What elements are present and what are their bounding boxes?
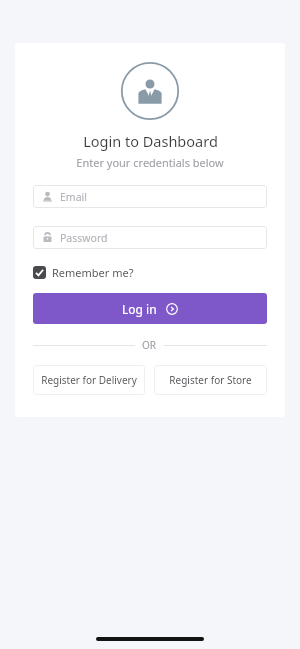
staticText: Login to Dashboard <box>83 131 218 151</box>
button[interactable]: Register for Store <box>154 365 267 395</box>
staticText: Register for Delivery <box>41 373 137 387</box>
staticText: OR <box>142 338 157 352</box>
button[interactable]: Log in <box>33 293 267 324</box>
button[interactable]: Remember me? <box>33 265 267 280</box>
staticText: Log in <box>122 301 157 317</box>
button[interactable]: Register for Delivery <box>33 365 145 395</box>
staticText: Password <box>60 231 108 245</box>
button[interactable]: Password <box>33 226 267 249</box>
button[interactable]: Email <box>33 185 267 208</box>
staticText: Enter your credentials below <box>76 155 224 170</box>
staticText: Remember me? <box>52 265 134 280</box>
staticText: Email <box>60 190 87 204</box>
staticText: Register for Store <box>169 373 252 387</box>
